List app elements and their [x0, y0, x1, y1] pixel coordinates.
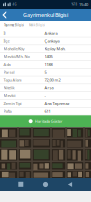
staticText: 1188 — [44, 62, 52, 67]
button[interactable]: Back — [0, 9, 10, 21]
staticText: Ana Taşınmaz — [44, 101, 69, 106]
staticText: 5 — [44, 69, 46, 75]
staticText: Ankara — [44, 30, 57, 36]
staticText: 611 — [44, 108, 50, 114]
button[interactable]: Taşınmaz Bilgisi — [3, 21, 25, 29]
staticText: Pafta — [3, 108, 11, 114]
button[interactable]: Back — [66, 181, 73, 188]
staticText: 72,00 m2 — [44, 77, 60, 83]
button[interactable]: Malik Bilgisi — [28, 21, 46, 29]
staticText: Kızılay Mah. — [44, 46, 65, 51]
staticText: Haritada Göster — [35, 119, 63, 124]
staticText: Malik Bilgisi — [29, 23, 45, 27]
button[interactable]: Recent apps — [17, 181, 24, 188]
staticText: İlçe — [3, 38, 9, 44]
staticText: Taşınmaz Bilgisi — [4, 23, 24, 27]
staticText: Parsel — [3, 69, 14, 75]
staticText: Çankaya — [44, 38, 59, 44]
staticText: Tapu Alanı — [3, 77, 21, 83]
staticText: %78 — [71, 3, 77, 6]
button[interactable]: Home — [42, 181, 49, 188]
staticText: Mevkii/Mh. No — [3, 54, 29, 59]
button[interactable]: Haritada Göster — [0, 115, 91, 127]
staticText: Zemin Tipi — [3, 101, 21, 106]
staticText: 4G — [12, 3, 16, 6]
staticText: Gayrimenkul Bilgisi — [23, 11, 68, 19]
staticText: Arsa — [44, 85, 53, 90]
staticText: 1405 — [44, 54, 52, 59]
staticText: Mevkii — [3, 93, 15, 98]
staticText: - — [44, 93, 45, 98]
staticText: İl — [3, 30, 5, 36]
staticText: Nitelik — [3, 85, 14, 90]
staticText: 15:40 — [79, 2, 88, 7]
staticText: Ada — [3, 62, 10, 67]
staticText: Mahalle/Köy — [3, 46, 24, 51]
